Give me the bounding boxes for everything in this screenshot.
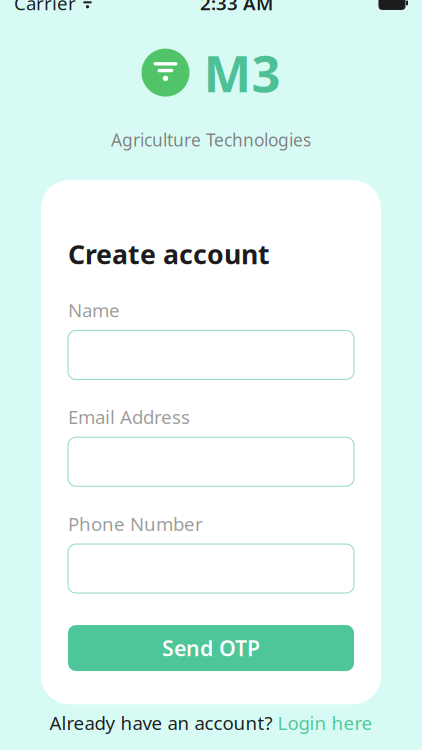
button[interactable]: Name	[68, 330, 354, 379]
staticText: Email Address	[68, 404, 190, 429]
staticText: M3	[203, 39, 280, 106]
button[interactable]: Send OTP	[68, 625, 354, 671]
button[interactable]: Email Address	[68, 437, 354, 486]
staticText: Agriculture Technologies	[111, 128, 311, 151]
staticText: Login here	[277, 710, 372, 735]
staticText: 2:33 AM	[200, 0, 273, 15]
staticText: Phone Number	[68, 511, 203, 536]
staticText: Send OTP	[162, 634, 260, 662]
staticText: Already have an account?	[49, 710, 272, 735]
staticText: Name	[68, 298, 120, 322]
button[interactable]: Phone Number	[68, 544, 354, 593]
staticText: Create account	[68, 236, 270, 272]
staticText: Carrier	[14, 0, 76, 15]
button[interactable]: Already have an account?	[39, 704, 382, 741]
